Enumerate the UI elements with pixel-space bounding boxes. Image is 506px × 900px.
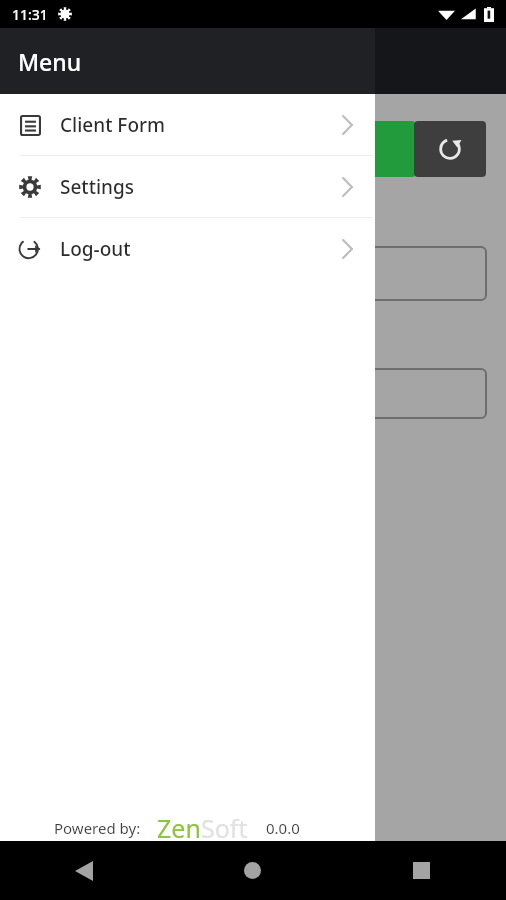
button[interactable] (20, 246, 487, 301)
button[interactable]: Home (168, 841, 337, 900)
staticText: Client Form (60, 112, 166, 138)
staticText: Soft (201, 811, 248, 845)
button[interactable]: Client Form (0, 94, 375, 155)
button[interactable] (300, 121, 415, 177)
button[interactable]: Settings (0, 156, 375, 217)
staticText: 11:31 (12, 5, 48, 24)
button[interactable]: Back (0, 841, 168, 900)
staticText: Zen (157, 811, 201, 845)
button[interactable] (20, 368, 487, 419)
staticText: Powered by: (54, 818, 141, 838)
staticText: 0.0.0 (266, 818, 300, 838)
staticText: Log-out (60, 236, 131, 262)
button[interactable]: Recent apps (337, 841, 506, 900)
staticText: Menu (18, 46, 82, 77)
button[interactable]: Refresh (414, 121, 486, 177)
staticText: Settings (60, 174, 134, 200)
button[interactable]: Log-out (0, 218, 375, 279)
